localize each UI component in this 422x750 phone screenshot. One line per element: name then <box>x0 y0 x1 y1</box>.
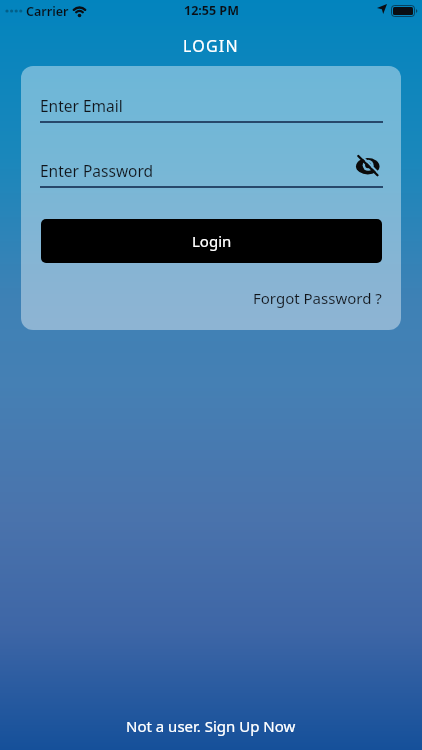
button[interactable]: Enter Password <box>40 156 383 188</box>
staticText: Login <box>192 231 232 251</box>
staticText: Carrier <box>26 3 69 20</box>
button[interactable]: Forgot Password ? <box>253 288 382 308</box>
button[interactable]: Enter Email <box>40 92 383 124</box>
staticText: Enter Password <box>40 160 154 181</box>
staticText: LOGIN <box>183 35 239 57</box>
staticText: Enter Email <box>40 95 123 116</box>
staticText: 12:55 PM <box>184 2 239 19</box>
button[interactable] <box>356 155 380 176</box>
button[interactable]: Not a user. Sign Up Now <box>126 716 296 736</box>
button[interactable]: Login <box>41 219 382 263</box>
